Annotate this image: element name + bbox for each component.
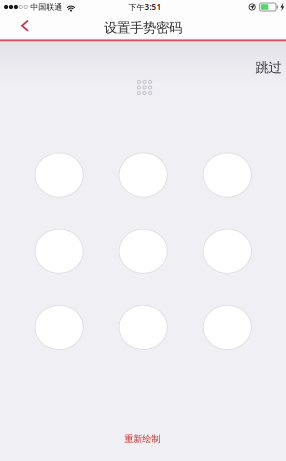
staticText: 跳过	[255, 59, 281, 76]
button[interactable]: 跳过	[249, 53, 286, 82]
staticText: 重新绘制	[124, 433, 160, 445]
staticText: 中国联通	[30, 2, 62, 12]
button[interactable]: 返回	[0, 14, 50, 41]
staticText: 下午3:51	[128, 2, 161, 12]
staticText: 设置手势密码	[104, 19, 182, 36]
button[interactable]: 重新绘制	[108, 426, 176, 452]
